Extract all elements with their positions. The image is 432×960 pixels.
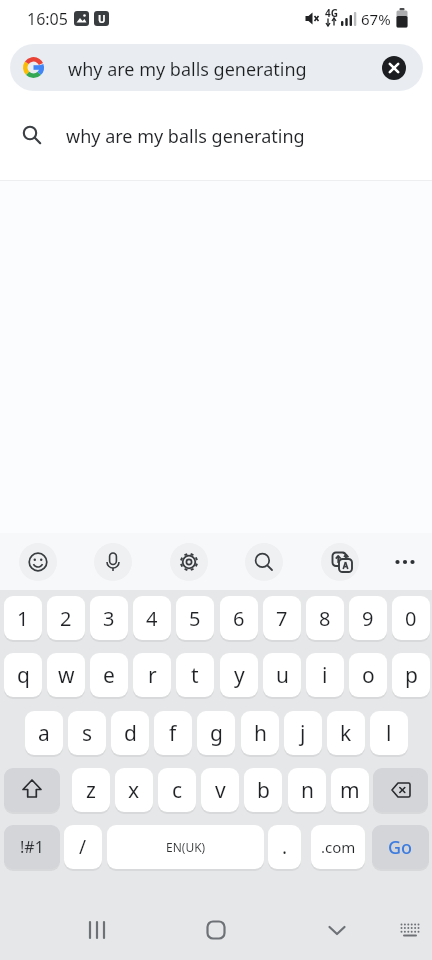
button[interactable] xyxy=(394,914,426,946)
button[interactable]: 5 xyxy=(176,596,214,640)
button[interactable] xyxy=(77,910,117,950)
staticText: m xyxy=(340,776,360,805)
button[interactable]: l xyxy=(370,711,408,755)
button[interactable]: s xyxy=(68,711,106,755)
button[interactable]: y xyxy=(220,653,258,697)
staticText: 0 xyxy=(405,605,417,632)
button[interactable]: u xyxy=(263,653,301,697)
button[interactable]: b xyxy=(244,768,282,812)
button[interactable]: r xyxy=(133,653,171,697)
staticText: 6 xyxy=(233,605,245,632)
staticText: 4 xyxy=(146,605,158,632)
button[interactable] xyxy=(0,100,432,181)
button[interactable]: 3 xyxy=(90,596,128,640)
button[interactable]: 0 xyxy=(392,596,430,640)
staticText: z xyxy=(86,776,96,805)
button[interactable]: 1 xyxy=(4,596,42,640)
button[interactable]: . xyxy=(268,825,301,869)
staticText: Go xyxy=(388,835,413,860)
button[interactable] xyxy=(196,910,236,950)
staticText: why are my balls generating xyxy=(68,57,307,82)
staticText: q xyxy=(17,661,30,690)
staticText: / xyxy=(79,834,87,860)
button[interactable] xyxy=(382,56,406,80)
button[interactable]: 4 xyxy=(133,596,171,640)
button[interactable]: k xyxy=(327,711,365,755)
staticText: 2 xyxy=(60,605,72,632)
button[interactable]: EN(UK) xyxy=(107,825,264,869)
button[interactable]: 9 xyxy=(349,596,387,640)
button[interactable]: d xyxy=(111,711,149,755)
button[interactable]: g xyxy=(197,711,235,755)
button[interactable]: i xyxy=(306,653,344,697)
button[interactable]: m xyxy=(331,768,369,812)
staticText: d xyxy=(124,719,137,748)
staticText: w xyxy=(58,661,75,690)
button[interactable]: n xyxy=(288,768,326,812)
button[interactable]: x xyxy=(115,768,153,812)
button[interactable]: p xyxy=(392,653,430,697)
staticText: c xyxy=(172,776,183,805)
button[interactable] xyxy=(4,768,60,812)
staticText: n xyxy=(301,776,314,805)
button[interactable]: w xyxy=(47,653,85,697)
button[interactable]: c xyxy=(158,768,196,812)
staticText: v xyxy=(215,776,226,805)
button[interactable]: t xyxy=(176,653,214,697)
staticText: x xyxy=(128,776,140,805)
staticText: 5 xyxy=(189,605,201,632)
button[interactable]: 7 xyxy=(263,596,301,640)
staticText: l xyxy=(386,719,392,748)
button[interactable]: j xyxy=(284,711,322,755)
staticText: U xyxy=(98,12,106,26)
staticText: . xyxy=(282,834,288,860)
staticText: 67% xyxy=(361,9,391,29)
button[interactable] xyxy=(387,543,425,581)
button[interactable]: 6 xyxy=(220,596,258,640)
staticText: y xyxy=(234,661,245,690)
button[interactable] xyxy=(321,543,359,581)
button[interactable] xyxy=(94,543,132,581)
button[interactable]: h xyxy=(241,711,279,755)
button[interactable]: f xyxy=(154,711,192,755)
button[interactable] xyxy=(373,768,428,812)
staticText: g xyxy=(210,719,223,748)
staticText: h xyxy=(254,719,267,748)
staticText: f xyxy=(169,719,177,748)
button[interactable]: z xyxy=(72,768,110,812)
button[interactable]: .com xyxy=(311,825,365,869)
button[interactable] xyxy=(170,543,208,581)
staticText: p xyxy=(405,661,418,690)
staticText: j xyxy=(300,719,306,748)
button[interactable] xyxy=(19,543,57,581)
button[interactable]: 2 xyxy=(47,596,85,640)
staticText: 9 xyxy=(362,605,374,632)
staticText: s xyxy=(82,719,93,748)
button[interactable]: o xyxy=(349,653,387,697)
staticText: 3 xyxy=(103,605,115,632)
button[interactable] xyxy=(317,910,357,950)
button[interactable]: / xyxy=(64,825,102,869)
staticText: .com xyxy=(321,837,356,857)
staticText: k xyxy=(340,719,352,748)
button[interactable]: a xyxy=(25,711,63,755)
staticText: r xyxy=(148,661,157,690)
staticText: 1 xyxy=(17,605,29,632)
button[interactable]: e xyxy=(90,653,128,697)
button[interactable]: q xyxy=(4,653,42,697)
button[interactable] xyxy=(245,543,283,581)
staticText: o xyxy=(362,661,375,690)
button[interactable]: Go xyxy=(372,825,429,869)
staticText: 7 xyxy=(276,605,288,632)
staticText: u xyxy=(276,661,289,690)
button[interactable] xyxy=(10,44,423,91)
staticText: why are my balls generating xyxy=(66,124,305,149)
staticText: 16:05 xyxy=(27,8,68,30)
button[interactable]: !#1 xyxy=(4,825,60,869)
staticText: EN(UK) xyxy=(166,839,206,855)
staticText: a xyxy=(38,719,50,748)
button[interactable]: 8 xyxy=(306,596,344,640)
button[interactable]: v xyxy=(201,768,239,812)
staticText: !#1 xyxy=(20,836,44,858)
staticText: b xyxy=(257,776,270,805)
